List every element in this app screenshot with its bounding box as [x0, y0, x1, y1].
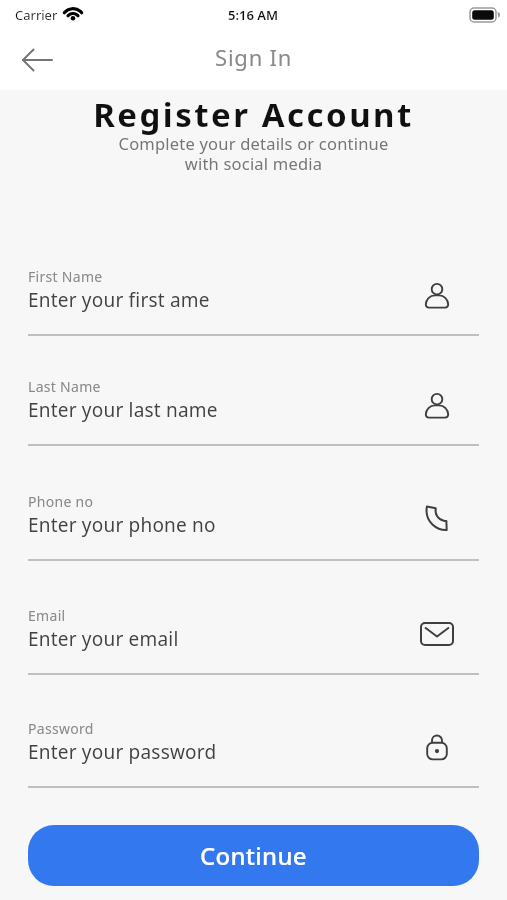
staticText: First Name: [28, 267, 103, 286]
staticText: Register Account: [0, 92, 507, 137]
staticText: Enter your first ame: [28, 287, 421, 313]
button[interactable]: Last Name: [28, 377, 479, 446]
staticText: Last Name: [28, 377, 101, 396]
staticText: Enter your email: [28, 626, 421, 652]
staticText: 5:16 AM: [228, 6, 279, 24]
staticText: Enter your password: [28, 739, 421, 765]
staticText: Email: [28, 606, 66, 625]
staticText: Continue: [200, 839, 307, 872]
button[interactable]: Continue: [28, 825, 479, 886]
staticText: Sign In: [215, 42, 293, 72]
button[interactable]: First Name: [28, 267, 479, 336]
staticText: Complete your details or continue with s…: [0, 132, 507, 175]
staticText: Phone no: [28, 492, 94, 511]
button[interactable]: Phone no: [28, 492, 479, 561]
staticText: Carrier: [15, 6, 58, 24]
staticText: Password: [28, 719, 94, 738]
button[interactable]: Password: [28, 719, 479, 788]
button[interactable]: [14, 37, 60, 83]
staticText: Enter your last name: [28, 397, 421, 423]
button[interactable]: Email: [28, 606, 479, 675]
staticText: Enter your phone no: [28, 512, 421, 538]
